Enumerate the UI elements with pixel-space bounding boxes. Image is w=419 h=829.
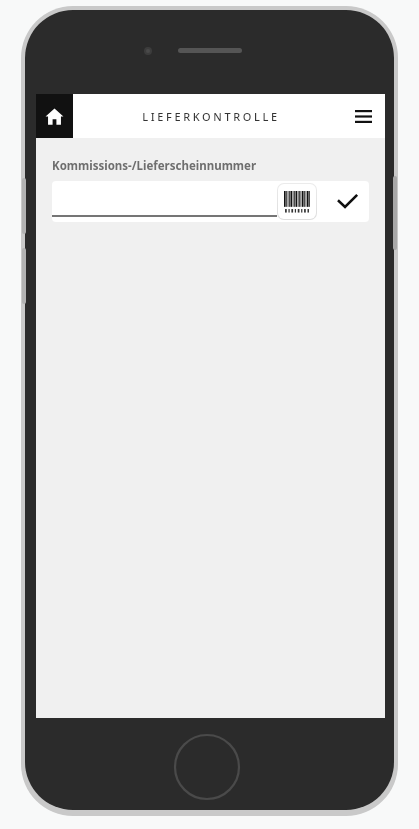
button[interactable]: Scan barcode <box>278 184 316 219</box>
button[interactable]: Home <box>36 94 73 138</box>
staticText: LIEFERKONTROLLE <box>142 109 280 124</box>
staticText: Kommissions-/Lieferscheinnummer <box>52 158 257 174</box>
button[interactable]: Confirm <box>325 181 369 222</box>
button[interactable] <box>52 181 277 222</box>
button[interactable]: Menu <box>341 94 385 138</box>
